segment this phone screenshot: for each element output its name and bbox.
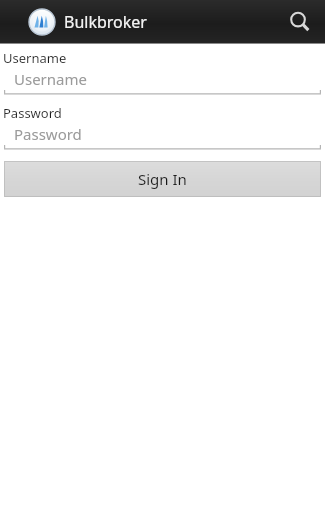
staticText: Sign In — [138, 169, 187, 189]
button[interactable]: Sign In — [4, 161, 321, 197]
staticText: Username — [14, 69, 87, 89]
button[interactable]: Password — [4, 123, 321, 150]
button[interactable]: Username — [4, 68, 321, 95]
staticText: Password — [14, 124, 82, 144]
staticText: Bulkbroker — [64, 11, 147, 33]
staticText: Username — [3, 49, 67, 67]
button[interactable]: Search — [278, 0, 321, 43]
staticText: Password — [3, 104, 62, 122]
